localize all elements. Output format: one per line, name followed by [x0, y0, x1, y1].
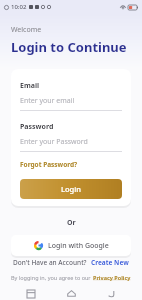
button[interactable]: Login — [20, 179, 122, 199]
staticText: 10:02 — [11, 3, 27, 11]
button[interactable]: Enter your Password — [20, 137, 122, 152]
button[interactable]: Home — [62, 287, 80, 300]
staticText: By logging in, you agree to our — [11, 274, 93, 281]
staticText: Enter your email — [20, 96, 75, 106]
button[interactable]: Back — [102, 287, 120, 300]
staticText: Password — [20, 122, 54, 132]
button[interactable]: Forgot Password? — [20, 160, 78, 169]
staticText: Create New — [91, 258, 129, 267]
staticText: Forgot Password? — [20, 160, 78, 169]
button[interactable]: Privacy Policy — [93, 274, 131, 281]
button[interactable]: Recent apps — [22, 287, 40, 300]
staticText: Privacy Policy — [93, 274, 131, 281]
button[interactable]: Login with Google — [11, 235, 131, 256]
button[interactable]: Create New — [91, 258, 129, 267]
staticText: Login — [61, 184, 81, 194]
staticText: Don't Have an Account? — [13, 258, 87, 267]
staticText: Login with Google — [48, 241, 109, 251]
staticText: Enter your Password — [20, 137, 88, 147]
staticText: Or — [67, 218, 76, 228]
button[interactable]: Enter your email — [20, 96, 122, 111]
staticText: Email — [20, 81, 40, 91]
staticText: Login to Continue — [11, 38, 127, 56]
staticText: Welcome — [11, 25, 42, 35]
